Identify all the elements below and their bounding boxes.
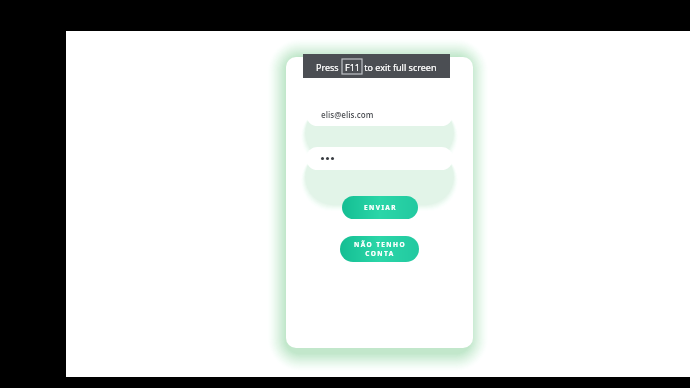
- staticText: ENVIAR: [364, 203, 397, 212]
- staticText: Press: [316, 61, 342, 73]
- button[interactable]: elis@elis.com: [306, 103, 453, 126]
- button[interactable]: [306, 147, 453, 170]
- staticText: NÃO TENHO: [354, 240, 406, 249]
- staticText: F11: [345, 61, 360, 73]
- button[interactable]: Enviar: [342, 196, 418, 219]
- button[interactable]: Não tenho conta: [340, 236, 419, 262]
- staticText: to exit full screen: [362, 61, 437, 73]
- staticText: elis@elis.com: [321, 109, 374, 120]
- staticText: CONTA: [365, 249, 395, 258]
